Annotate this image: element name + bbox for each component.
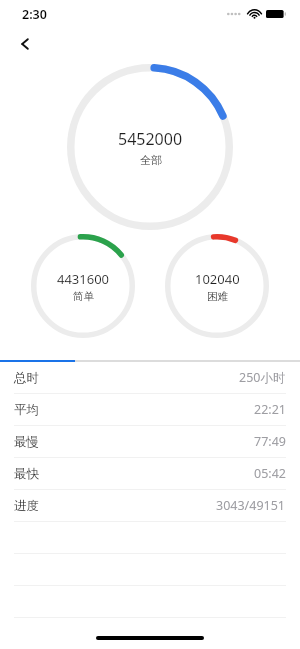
staticText: 05:42 xyxy=(254,465,286,482)
staticText: 最快 xyxy=(14,466,39,482)
button[interactable]: 5452000 xyxy=(67,64,233,230)
button[interactable]: 进度 xyxy=(0,490,300,522)
button[interactable]: 平均 xyxy=(0,394,300,426)
staticText: 22:21 xyxy=(254,401,286,418)
button[interactable]: 102040 xyxy=(165,234,269,338)
staticText: 77:49 xyxy=(254,433,286,450)
staticText: 2:30 xyxy=(22,6,47,23)
staticText: 平均 xyxy=(14,402,39,418)
staticText: 总时 xyxy=(14,370,39,386)
staticText: 进度 xyxy=(14,498,39,514)
button[interactable]: 最快 xyxy=(0,458,300,490)
staticText: 困难 xyxy=(207,290,228,303)
button[interactable]: 4431600 xyxy=(31,234,135,338)
staticText: 3043/49151 xyxy=(216,497,286,514)
button[interactable]: 总时 xyxy=(0,362,300,394)
button[interactable]: Back xyxy=(10,29,40,59)
staticText: 4431600 xyxy=(57,270,110,288)
staticText: 5452000 xyxy=(118,128,183,150)
button[interactable]: 最慢 xyxy=(0,426,300,458)
staticText: 102040 xyxy=(195,270,240,288)
staticText: 250小时 xyxy=(239,369,286,386)
staticText: 最慢 xyxy=(14,434,39,450)
staticText: 简单 xyxy=(73,290,94,303)
staticText: 全部 xyxy=(140,153,162,167)
